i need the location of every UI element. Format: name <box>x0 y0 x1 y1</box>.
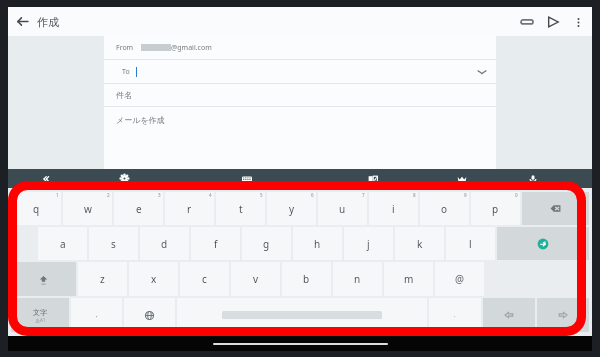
staticText: n <box>354 272 361 286</box>
button[interactable]: p <box>471 192 520 225</box>
staticText: メールを作成 <box>116 115 165 125</box>
button[interactable]: r <box>165 192 214 225</box>
button[interactable]: Backspace <box>522 192 589 225</box>
button[interactable]: Shift <box>11 262 76 296</box>
button[interactable]: v <box>231 262 280 296</box>
staticText: @gmail.com <box>171 43 212 53</box>
button[interactable]: m <box>384 262 433 296</box>
staticText: u <box>339 202 346 216</box>
button[interactable]: 件名 <box>104 84 496 106</box>
staticText: g <box>263 237 270 251</box>
button[interactable]: w <box>63 192 112 225</box>
staticText: 件名 <box>116 90 132 100</box>
button[interactable]: z <box>78 262 127 296</box>
button[interactable]: d <box>140 227 189 260</box>
button[interactable]: Handwriting <box>326 169 419 188</box>
button[interactable]: Collapse toolbar <box>8 169 82 188</box>
button[interactable]: b <box>282 262 331 296</box>
staticText: 0 <box>515 192 518 198</box>
button[interactable]: u <box>318 192 367 225</box>
button[interactable]: Keyboard layout <box>167 169 326 188</box>
button[interactable]: Send <box>540 9 566 35</box>
button[interactable]: c <box>180 262 229 296</box>
staticText: l <box>469 237 472 251</box>
staticText: 6 <box>311 192 314 198</box>
button[interactable]: , <box>71 298 122 332</box>
staticText: , <box>96 311 98 319</box>
staticText: e <box>136 202 142 216</box>
button[interactable]: j <box>344 227 393 260</box>
button[interactable]: Voice input <box>504 169 562 188</box>
button[interactable]: @ <box>435 262 484 296</box>
staticText: 8 <box>413 192 416 198</box>
button[interactable]: Back <box>8 7 37 36</box>
button[interactable]: y <box>267 192 316 225</box>
staticText: s <box>111 237 116 251</box>
button[interactable]: Suggestions <box>486 262 589 296</box>
button[interactable]: Move cursor right <box>537 298 589 332</box>
staticText: m <box>404 272 414 286</box>
button[interactable]: Space <box>177 298 427 332</box>
staticText: b <box>303 272 310 286</box>
staticText: 2 <box>107 192 110 198</box>
staticText: f <box>214 237 218 251</box>
button[interactable]: e <box>114 192 163 225</box>
button[interactable]: k <box>395 227 444 260</box>
button[interactable]: g <box>242 227 291 260</box>
staticText: 3 <box>158 192 161 198</box>
staticText: 1 <box>56 192 59 198</box>
staticText: 9 <box>464 192 467 198</box>
button[interactable]: x <box>129 262 178 296</box>
staticText: k <box>417 237 423 251</box>
button[interactable]: a <box>38 227 87 260</box>
staticText: w <box>84 202 92 216</box>
staticText: From <box>116 43 134 53</box>
button[interactable]: Enter <box>497 227 589 260</box>
staticText: o <box>441 202 448 216</box>
staticText: 5 <box>260 192 263 198</box>
button[interactable]: To <box>104 60 496 83</box>
button[interactable]: More options <box>566 10 590 34</box>
staticText: x <box>151 272 157 286</box>
staticText: h <box>314 237 321 251</box>
button[interactable]: i <box>369 192 418 225</box>
staticText: z <box>100 272 105 286</box>
button[interactable]: Change language <box>124 298 175 332</box>
staticText: j <box>367 237 370 251</box>
staticText: 文字 <box>33 308 47 317</box>
button[interactable]: s <box>89 227 138 260</box>
staticText: あA1 <box>35 317 46 323</box>
button[interactable]: Move cursor left <box>483 298 535 332</box>
staticText: 作成 <box>37 15 59 29</box>
staticText: t <box>239 202 243 216</box>
button[interactable]: f <box>191 227 240 260</box>
button[interactable]: Settings <box>82 169 167 188</box>
button[interactable]: h <box>293 227 342 260</box>
button[interactable]: o <box>420 192 469 225</box>
staticText: i <box>392 202 395 216</box>
staticText: q <box>33 202 40 216</box>
staticText: @ <box>455 272 464 286</box>
button[interactable]: q <box>11 192 61 225</box>
staticText: 7 <box>362 192 365 198</box>
staticText: To <box>122 67 130 77</box>
staticText: a <box>60 237 66 251</box>
staticText: . <box>454 311 456 319</box>
button[interactable]: t <box>216 192 265 225</box>
staticText: v <box>253 272 259 286</box>
button[interactable]: l <box>446 227 495 260</box>
staticText: … <box>116 325 120 332</box>
button[interactable]: . <box>429 298 481 332</box>
staticText: y <box>289 202 295 216</box>
button[interactable]: Stickers <box>419 169 504 188</box>
button[interactable]: From <box>104 36 496 59</box>
button[interactable]: メールを作成 <box>104 107 496 133</box>
button[interactable]: Attach file <box>514 9 540 35</box>
button[interactable]: n <box>333 262 382 296</box>
staticText: r <box>187 202 192 216</box>
staticText: d <box>161 237 168 251</box>
staticText: 4 <box>209 192 212 198</box>
button[interactable]: Switch input mode <box>11 298 69 332</box>
button[interactable]: Expand recipients <box>472 62 492 82</box>
